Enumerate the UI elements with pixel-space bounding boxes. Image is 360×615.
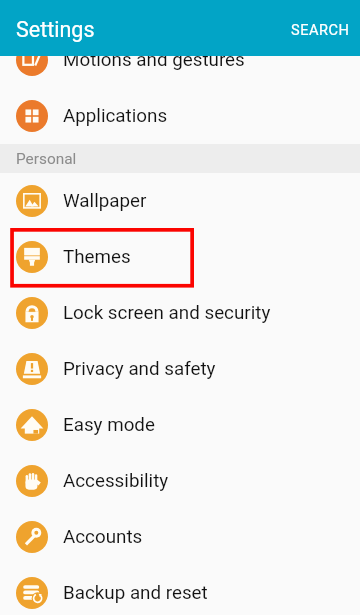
button[interactable]: Backup and reset [0, 565, 360, 615]
button[interactable]: Easy mode [0, 397, 360, 453]
staticText: Applications [63, 105, 168, 127]
button[interactable]: Applications [0, 88, 360, 144]
staticText: Personal [16, 150, 77, 168]
button[interactable]: Search [277, 4, 360, 53]
button[interactable]: Lock screen and security [0, 285, 360, 341]
staticText: Accounts [63, 526, 143, 548]
staticText: Accessibility [63, 470, 169, 492]
button[interactable]: Accessibility [0, 453, 360, 509]
staticText: Motions and gestures [63, 49, 245, 71]
staticText: SEARCH [291, 21, 350, 38]
staticText: Wallpaper [63, 190, 147, 212]
staticText: Settings [16, 17, 95, 42]
staticText: Privacy and safety [63, 358, 216, 380]
staticText: Backup and reset [63, 582, 208, 604]
button[interactable]: Themes [0, 229, 360, 285]
staticText: Easy mode [63, 414, 155, 436]
button[interactable]: Motions and gestures [0, 32, 360, 88]
button[interactable]: Wallpaper [0, 173, 360, 229]
staticText: Themes [63, 246, 131, 268]
button[interactable]: Privacy and safety [0, 341, 360, 397]
staticText: Lock screen and security [63, 302, 271, 324]
button[interactable]: Accounts [0, 509, 360, 565]
